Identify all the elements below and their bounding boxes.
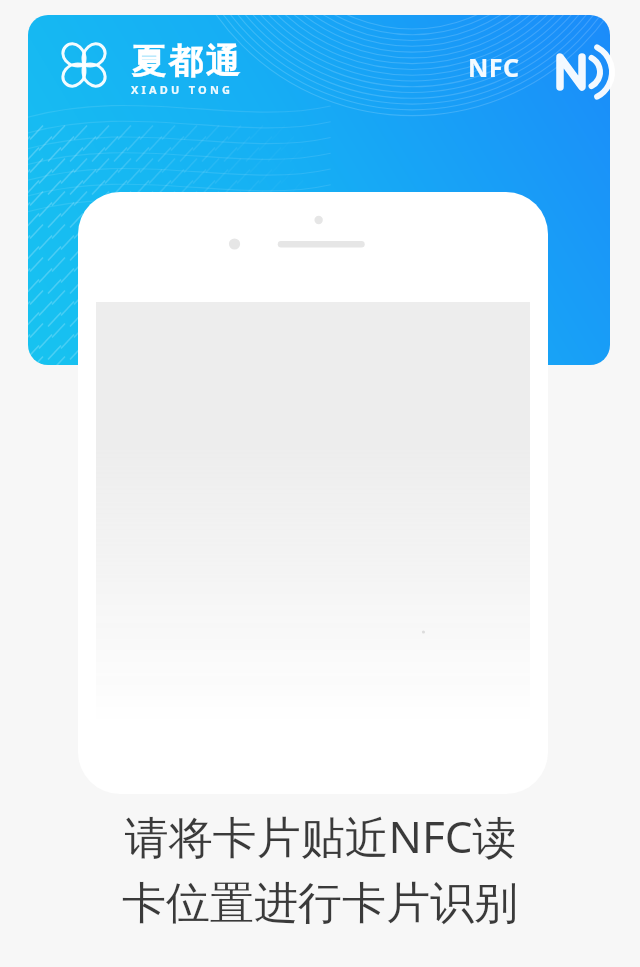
staticText: 夏都通: [130, 40, 241, 83]
button[interactable]: Phone NFC reader area: [78, 192, 548, 752]
staticText: 卡位置进行卡片识别: [122, 876, 518, 931]
button[interactable]: Xiadu Tong NFC card: [28, 15, 610, 365]
staticText: XIADU TONG: [131, 82, 234, 97]
staticText: NFC: [468, 50, 520, 84]
staticText: 请将卡片贴近NFC读: [124, 806, 517, 866]
